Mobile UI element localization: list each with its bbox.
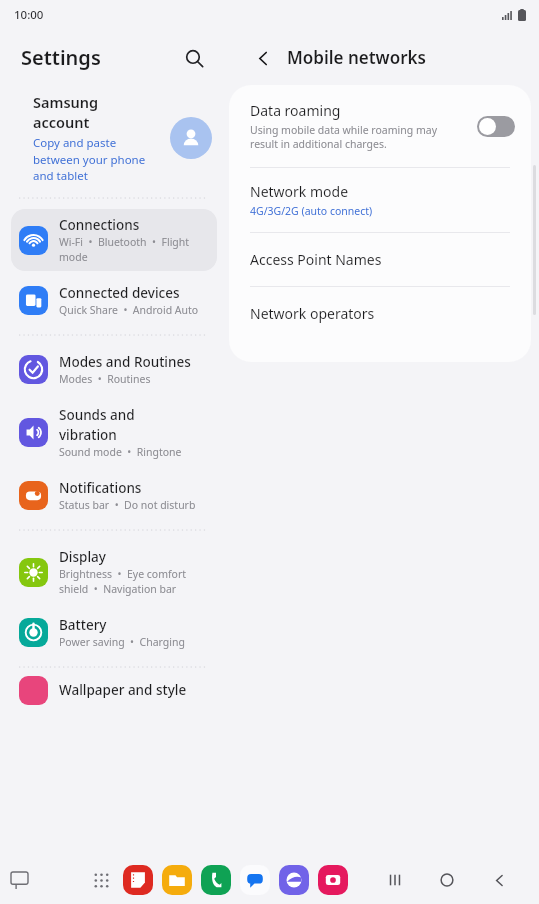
staticText: Battery bbox=[59, 616, 107, 634]
staticText: Wi-Fi • Bluetooth • Flight mode bbox=[59, 235, 190, 264]
button[interactable]: Connections bbox=[11, 209, 217, 271]
staticText: Using mobile data while roaming may resu… bbox=[250, 123, 437, 151]
staticText: Status bar • Do not disturb bbox=[59, 498, 196, 512]
staticText: Modes and Routines bbox=[59, 353, 191, 371]
staticText: Quick Share • Android Auto bbox=[59, 303, 199, 317]
button[interactable]: Modes and Routines bbox=[11, 346, 217, 393]
button[interactable]: Access Point Names bbox=[229, 233, 531, 286]
button[interactable]: Notifications bbox=[11, 472, 217, 519]
staticText: Display bbox=[59, 548, 106, 566]
staticText: Data roaming bbox=[250, 101, 341, 120]
button[interactable]: Notes bbox=[123, 865, 153, 895]
button[interactable]: Display bbox=[11, 541, 217, 603]
staticText: Mobile networks bbox=[287, 46, 426, 69]
button[interactable]: Internet bbox=[279, 865, 309, 895]
button[interactable]: Back bbox=[246, 41, 280, 75]
staticText: Connected devices bbox=[59, 284, 180, 302]
button[interactable]: Phone bbox=[201, 865, 231, 895]
button[interactable]: Data roaming bbox=[229, 85, 531, 167]
button[interactable]: All apps bbox=[86, 865, 116, 895]
staticText: Power saving • Charging bbox=[59, 635, 185, 649]
staticText: Notifications bbox=[59, 479, 142, 497]
button[interactable]: Network operators bbox=[229, 287, 531, 340]
staticText: Sounds and vibration bbox=[59, 406, 135, 444]
staticText: Settings bbox=[21, 44, 101, 71]
button[interactable]: Network mode bbox=[229, 168, 531, 232]
button[interactable]: Camera bbox=[318, 865, 348, 895]
staticText: Network operators bbox=[250, 304, 375, 323]
staticText: Modes • Routines bbox=[59, 372, 151, 386]
button[interactable]: Recents bbox=[375, 860, 415, 900]
button[interactable]: Search bbox=[176, 40, 212, 76]
staticText: Samsung account bbox=[33, 92, 99, 133]
button[interactable]: Sounds and vibration bbox=[11, 399, 217, 466]
button[interactable]: Connected devices bbox=[11, 277, 217, 324]
staticText: Brightness • Eye comfort shield • Naviga… bbox=[59, 567, 187, 596]
button[interactable]: Recent apps panel bbox=[4, 865, 34, 895]
button[interactable]: My Files bbox=[162, 865, 192, 895]
staticText: Wallpaper and style bbox=[59, 681, 187, 699]
button[interactable]: Wallpaper and style bbox=[0, 675, 228, 705]
button[interactable]: Back bbox=[479, 860, 519, 900]
staticText: Connections bbox=[59, 216, 140, 234]
button[interactable]: Messages bbox=[240, 865, 270, 895]
staticText: 10:00 bbox=[14, 7, 44, 23]
staticText: Copy and paste between your phone and ta… bbox=[33, 135, 146, 183]
button[interactable]: Samsung account bbox=[0, 85, 228, 190]
button[interactable]: Data roaming toggle bbox=[477, 116, 515, 137]
staticText: Access Point Names bbox=[250, 250, 382, 269]
staticText: 4G/3G/2G (auto connect) bbox=[250, 204, 373, 218]
button[interactable]: Battery bbox=[11, 609, 217, 656]
staticText: Sound mode • Ringtone bbox=[59, 445, 182, 459]
staticText: Network mode bbox=[250, 182, 349, 201]
button[interactable]: Home bbox=[427, 860, 467, 900]
